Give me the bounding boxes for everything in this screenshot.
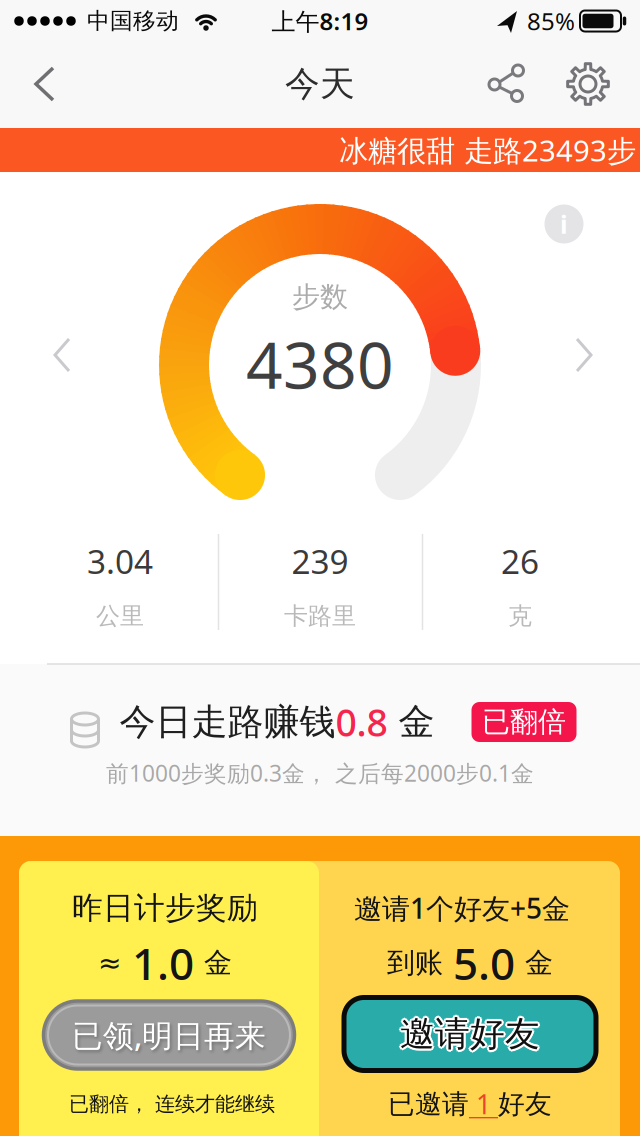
staticText: 1 [469,1086,498,1122]
staticText: 0.8 [335,697,387,747]
staticText: 昨日计步奖励 [72,889,258,927]
staticText: 金 [517,946,553,980]
button[interactable]: Back [16,54,72,114]
staticText: ≈ [98,947,130,979]
button[interactable]: 已领,明日再来 [43,1001,294,1069]
staticText: 3.04 [87,539,153,583]
staticText: 好友 [498,1088,552,1120]
staticText: 4380 [246,321,394,406]
button[interactable]: Next day [562,325,606,385]
button[interactable]: 邀请好友 [344,997,596,1070]
staticText: i [560,207,568,241]
staticText: 邀请好友 [398,1011,538,1054]
staticText: 已领,明日再来 [72,1015,266,1055]
staticText: 邀请好友 [400,1010,540,1053]
staticText: 卡路里 [284,601,356,631]
staticText: 已翻倍 [482,705,566,739]
staticText: 邀请好友 [402,1014,542,1057]
staticText: 邀请好友 [398,1013,538,1055]
staticText: 邀请好友 [400,1013,540,1055]
staticText: 金 [387,700,434,744]
staticText: 邀请好友 [400,1015,540,1057]
staticText: 金 [196,946,232,980]
staticText: 1.0 [132,934,194,992]
staticText: 26 [501,539,539,583]
staticText: 邀请好友 [398,1014,538,1057]
staticText: 今日走路赚钱 [119,700,335,744]
staticText: 步数 [292,280,348,314]
staticText: 今天 [285,63,355,105]
staticText: 公里 [96,601,144,631]
staticText: 冰糖很甜 走路23493步 [339,130,636,169]
button[interactable]: Info [544,204,583,243]
staticText: 85% [527,5,575,37]
staticText: 中国移动 [87,7,179,35]
staticText: 邀请1个好友+5金 [354,889,570,927]
staticText: 已翻倍， 连续才能继续 [69,1092,275,1116]
staticText: 已邀请 [388,1088,469,1120]
staticText: 邀请好友 [402,1011,542,1054]
staticText: 前1000步奖励0.3金， 之后每2000步0.1金 [106,758,534,788]
staticText: 上午8:19 [271,5,368,37]
button[interactable]: Settings [562,58,614,110]
staticText: 邀请好友 [402,1013,542,1055]
staticText: 5.0 [453,934,515,992]
staticText: 克 [508,601,532,631]
staticText: 239 [291,539,348,583]
button[interactable]: Share [485,60,533,108]
button[interactable]: Previous day [40,325,84,385]
staticText: 到账 [387,946,451,980]
